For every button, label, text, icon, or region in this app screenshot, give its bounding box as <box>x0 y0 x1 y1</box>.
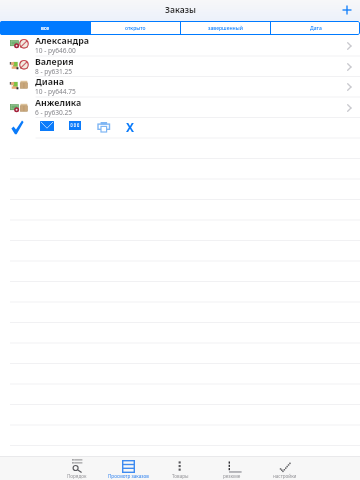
button[interactable]: Диана <box>0 76 360 97</box>
staticText: завершенный <box>208 25 243 32</box>
button[interactable]: настройки <box>260 457 310 480</box>
staticText: Порядок <box>67 473 87 479</box>
staticText: Дата <box>310 25 322 32</box>
staticText: все <box>41 25 50 32</box>
button[interactable]: Просмотр заказов <box>103 457 153 480</box>
button[interactable]: все <box>0 21 90 35</box>
button[interactable]: Print <box>98 122 112 136</box>
button[interactable]: Порядок <box>52 457 102 480</box>
button[interactable]: Confirm <box>11 120 25 134</box>
button[interactable]: Александра <box>0 35 360 56</box>
button[interactable]: открыто <box>91 21 180 35</box>
button[interactable]: Дата <box>271 21 360 35</box>
staticText: настройки <box>273 473 297 479</box>
button[interactable]: Товары <box>155 457 205 480</box>
button[interactable]: Email <box>40 121 54 135</box>
button[interactable]: завершенный <box>181 21 270 35</box>
staticText: Просмотр заказов <box>108 473 149 479</box>
button[interactable]: Add order <box>340 3 354 17</box>
button[interactable]: резюме <box>207 457 257 480</box>
staticText: резюме <box>223 473 241 479</box>
staticText: Валерия <box>35 56 74 68</box>
staticText: 6 - ру630.25 <box>35 108 73 117</box>
button[interactable]: Анжелика <box>0 97 360 118</box>
staticText: 8 - ру631.25 <box>35 67 73 76</box>
staticText: открыто <box>125 25 146 32</box>
staticText: Александра <box>35 35 90 47</box>
staticText: 10 - ру644.75 <box>35 87 76 96</box>
staticText: Диана <box>35 76 65 88</box>
button[interactable]: Валерия <box>0 56 360 77</box>
staticText: X <box>126 119 135 133</box>
staticText: Товары <box>172 473 189 479</box>
button[interactable]: Cancel <box>126 119 140 133</box>
staticText: Заказы <box>165 4 196 16</box>
staticText: Анжелика <box>35 97 82 109</box>
staticText: 10 - ру646.00 <box>35 46 76 55</box>
button[interactable]: Barcode <box>69 121 83 135</box>
